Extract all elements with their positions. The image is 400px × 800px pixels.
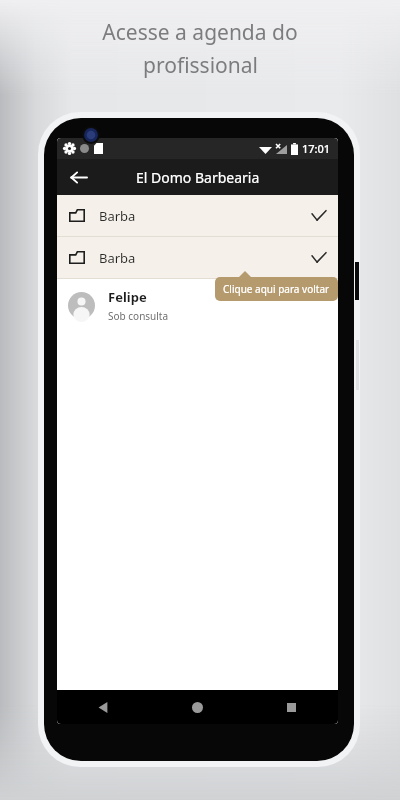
staticText: Sob consulta	[108, 309, 169, 323]
button[interactable]: Recentes	[244, 690, 338, 724]
staticText: profissional	[143, 51, 258, 80]
staticText: Felipe	[108, 288, 147, 306]
staticText: El Domo Barbearia	[136, 168, 260, 187]
button[interactable]: Barba	[57, 237, 338, 278]
button[interactable]: Voltar	[57, 690, 150, 724]
button[interactable]: Voltar	[63, 162, 93, 192]
staticText: Clique aqui para voltar	[223, 282, 330, 296]
button[interactable]: Clique aqui para voltar	[215, 277, 338, 301]
staticText: Barba	[99, 207, 136, 225]
staticText: 17:01	[302, 141, 331, 156]
button[interactable]: Barba	[57, 195, 338, 236]
button[interactable]: Início	[150, 690, 244, 724]
staticText: Barba	[99, 249, 136, 267]
button[interactable]: Felipe	[57, 279, 338, 331]
staticText: Acesse a agenda do	[102, 18, 298, 47]
